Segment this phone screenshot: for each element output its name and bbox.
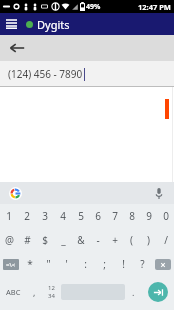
- button[interactable]: :: [76, 252, 95, 276]
- button[interactable]: Google search: [8, 186, 22, 200]
- button[interactable]: 6: [89, 204, 106, 228]
- staticText: $: [42, 233, 48, 247]
- staticText: _: [61, 233, 66, 247]
- button[interactable]: ": [39, 252, 57, 276]
- staticText: /: [164, 233, 168, 247]
- button[interactable]: 7: [106, 204, 123, 228]
- staticText: -: [96, 233, 100, 247]
- button[interactable]: Open navigation menu: [0, 13, 22, 35]
- staticText: 49%: [86, 2, 101, 12]
- button[interactable]: _: [54, 228, 72, 252]
- staticText: @: [5, 233, 14, 247]
- staticText: 7: [112, 209, 118, 223]
- staticText: Dygits: [37, 17, 70, 32]
- staticText: =\<: [6, 261, 16, 269]
- button[interactable]: &: [72, 228, 89, 252]
- button[interactable]: Back: [0, 35, 34, 61]
- button[interactable]: =\<: [0, 252, 21, 276]
- button[interactable]: 3: [36, 204, 54, 228]
- button[interactable]: -: [89, 228, 106, 252]
- staticText: ;: [103, 257, 106, 271]
- button[interactable]: 4: [54, 204, 72, 228]
- staticText: ABC: [6, 287, 21, 297]
- button[interactable]: ?: [133, 252, 152, 276]
- staticText: 34: [48, 292, 55, 300]
- staticText: 2: [24, 209, 30, 223]
- button[interactable]: Delete: [152, 252, 174, 276]
- button[interactable]: ): [140, 228, 157, 252]
- button[interactable]: #: [18, 228, 36, 252]
- staticText: :: [84, 257, 87, 271]
- staticText: ?: [140, 257, 145, 271]
- button[interactable]: 1: [0, 204, 18, 228]
- button[interactable]: 9: [140, 204, 157, 228]
- staticText: .: [132, 286, 135, 298]
- staticText: 6: [95, 209, 101, 223]
- staticText: ,: [33, 286, 36, 298]
- button[interactable]: 0: [157, 204, 174, 228]
- staticText: ): [147, 233, 150, 247]
- button[interactable]: +: [106, 228, 123, 252]
- staticText: (: [130, 233, 133, 247]
- staticText: 1: [6, 209, 12, 223]
- button[interactable]: ABC: [0, 279, 27, 305]
- button[interactable]: ': [57, 252, 76, 276]
- button[interactable]: ,: [27, 279, 42, 305]
- button[interactable]: 5: [72, 204, 89, 228]
- staticText: 12: [48, 284, 55, 292]
- staticText: 3: [42, 209, 48, 223]
- staticText: 9: [146, 209, 152, 223]
- staticText: *: [27, 257, 33, 271]
- staticText: 0: [163, 209, 169, 223]
- button[interactable]: Voice input: [152, 186, 166, 200]
- staticText: +: [112, 233, 118, 247]
- staticText: (124) 456 - 7890: [8, 67, 83, 81]
- button[interactable]: 8: [123, 204, 140, 228]
- staticText: #: [24, 233, 31, 247]
- staticText: 8: [129, 209, 135, 223]
- button[interactable]: Enter: [142, 279, 174, 305]
- button[interactable]: @: [0, 228, 18, 252]
- button[interactable]: $: [36, 228, 54, 252]
- staticText: !: [122, 257, 125, 271]
- staticText: ': [65, 257, 68, 271]
- staticText: &: [77, 233, 85, 247]
- button[interactable]: .: [125, 279, 142, 305]
- staticText: 4: [60, 209, 66, 223]
- button[interactable]: (: [123, 228, 140, 252]
- button[interactable]: Numbers: [42, 279, 61, 305]
- button[interactable]: !: [114, 252, 133, 276]
- button[interactable]: /: [157, 228, 174, 252]
- staticText: ": [46, 257, 51, 271]
- button[interactable]: (124) 456 - 7890: [0, 61, 174, 87]
- button[interactable]: 2: [18, 204, 36, 228]
- staticText: 12:47 PM: [138, 2, 171, 12]
- button[interactable]: ;: [95, 252, 114, 276]
- staticText: 5: [78, 209, 84, 223]
- button[interactable]: *: [21, 252, 39, 276]
